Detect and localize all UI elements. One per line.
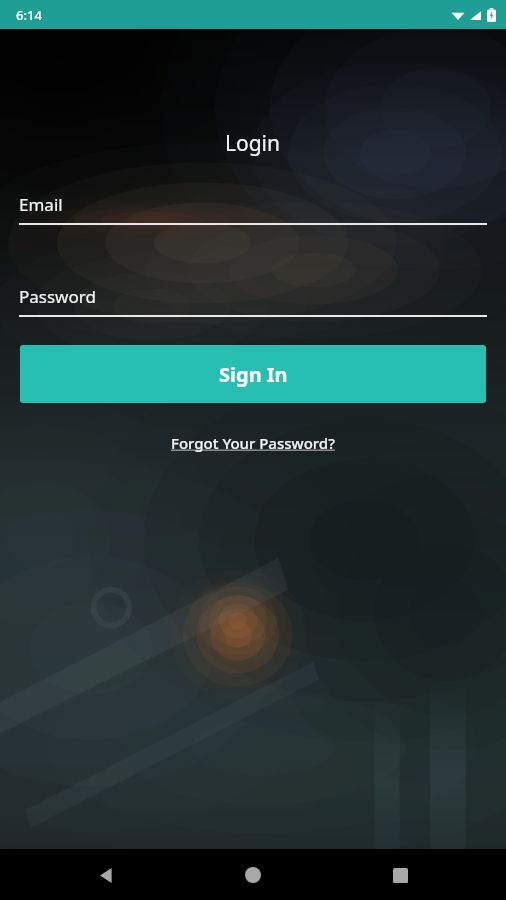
button[interactable]: Password: [19, 285, 487, 317]
button[interactable]: Back: [82, 851, 130, 899]
button[interactable]: Forgot Your Password?: [165, 431, 341, 455]
staticText: 6:14: [16, 6, 42, 24]
button[interactable]: Email: [19, 193, 487, 225]
button[interactable]: Sign In: [20, 345, 486, 403]
staticText: Forgot Your Password?: [171, 433, 335, 453]
staticText: Password: [19, 285, 96, 308]
staticText: Sign In: [219, 361, 288, 388]
staticText: Email: [19, 193, 63, 216]
button[interactable]: Recent apps: [376, 851, 424, 899]
button[interactable]: Home: [229, 851, 277, 899]
staticText: Login: [225, 129, 281, 158]
